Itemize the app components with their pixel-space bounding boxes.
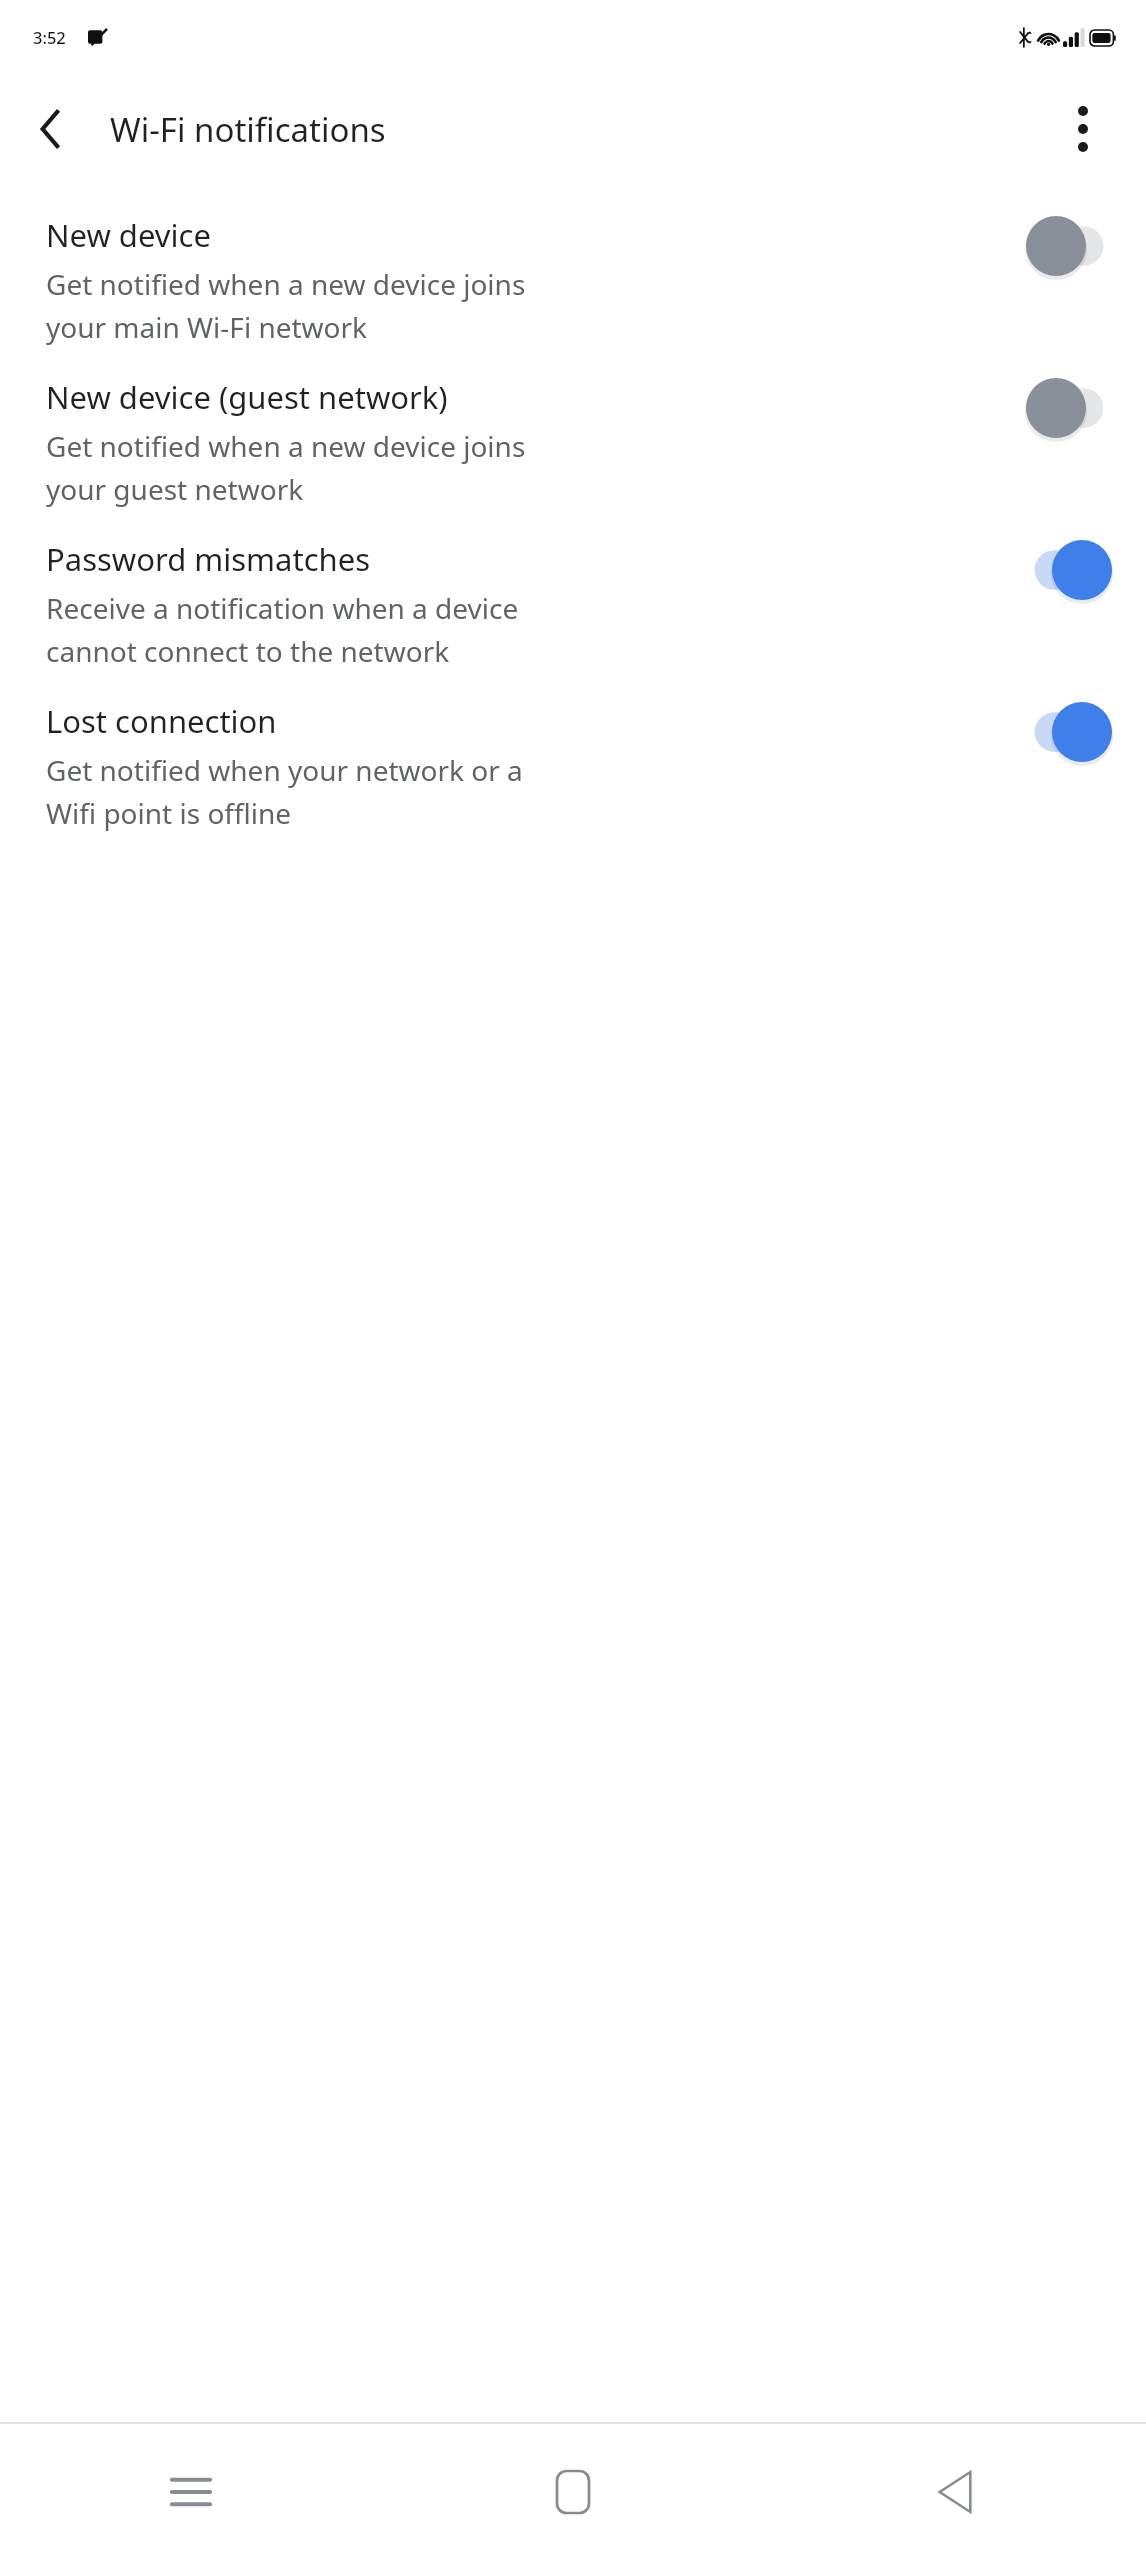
button[interactable]: New device (guest network) off — [1026, 378, 1112, 438]
staticText: 3:52 — [33, 26, 66, 48]
staticText: Get notified when a new device joins you… — [46, 265, 526, 346]
staticText: New device (guest network) — [46, 376, 448, 418]
staticText: Lost connection — [46, 700, 277, 742]
button[interactable]: Password mismatches on — [1026, 540, 1112, 600]
staticText: Get notified when your network or a Wifi… — [46, 751, 523, 832]
staticText: Receive a notification when a device can… — [46, 589, 519, 670]
button[interactable]: Back — [764, 2424, 1146, 2560]
button[interactable]: Home — [382, 2424, 764, 2560]
button[interactable]: Lost connection — [0, 692, 1146, 854]
button[interactable]: New device — [0, 206, 1146, 368]
button[interactable]: New device (guest network) — [0, 368, 1146, 530]
button[interactable]: Back — [20, 98, 82, 160]
button[interactable]: More options — [1050, 96, 1116, 162]
button[interactable]: Lost connection on — [1026, 702, 1112, 762]
button[interactable]: New device off — [1026, 216, 1112, 276]
button[interactable]: Password mismatches — [0, 530, 1146, 692]
staticText: Get notified when a new device joins you… — [46, 427, 526, 508]
staticText: Wi-Fi notifications — [110, 107, 386, 152]
staticText: Password mismatches — [46, 538, 371, 580]
button[interactable]: Recent apps — [0, 2424, 382, 2560]
staticText: New device — [46, 214, 211, 256]
